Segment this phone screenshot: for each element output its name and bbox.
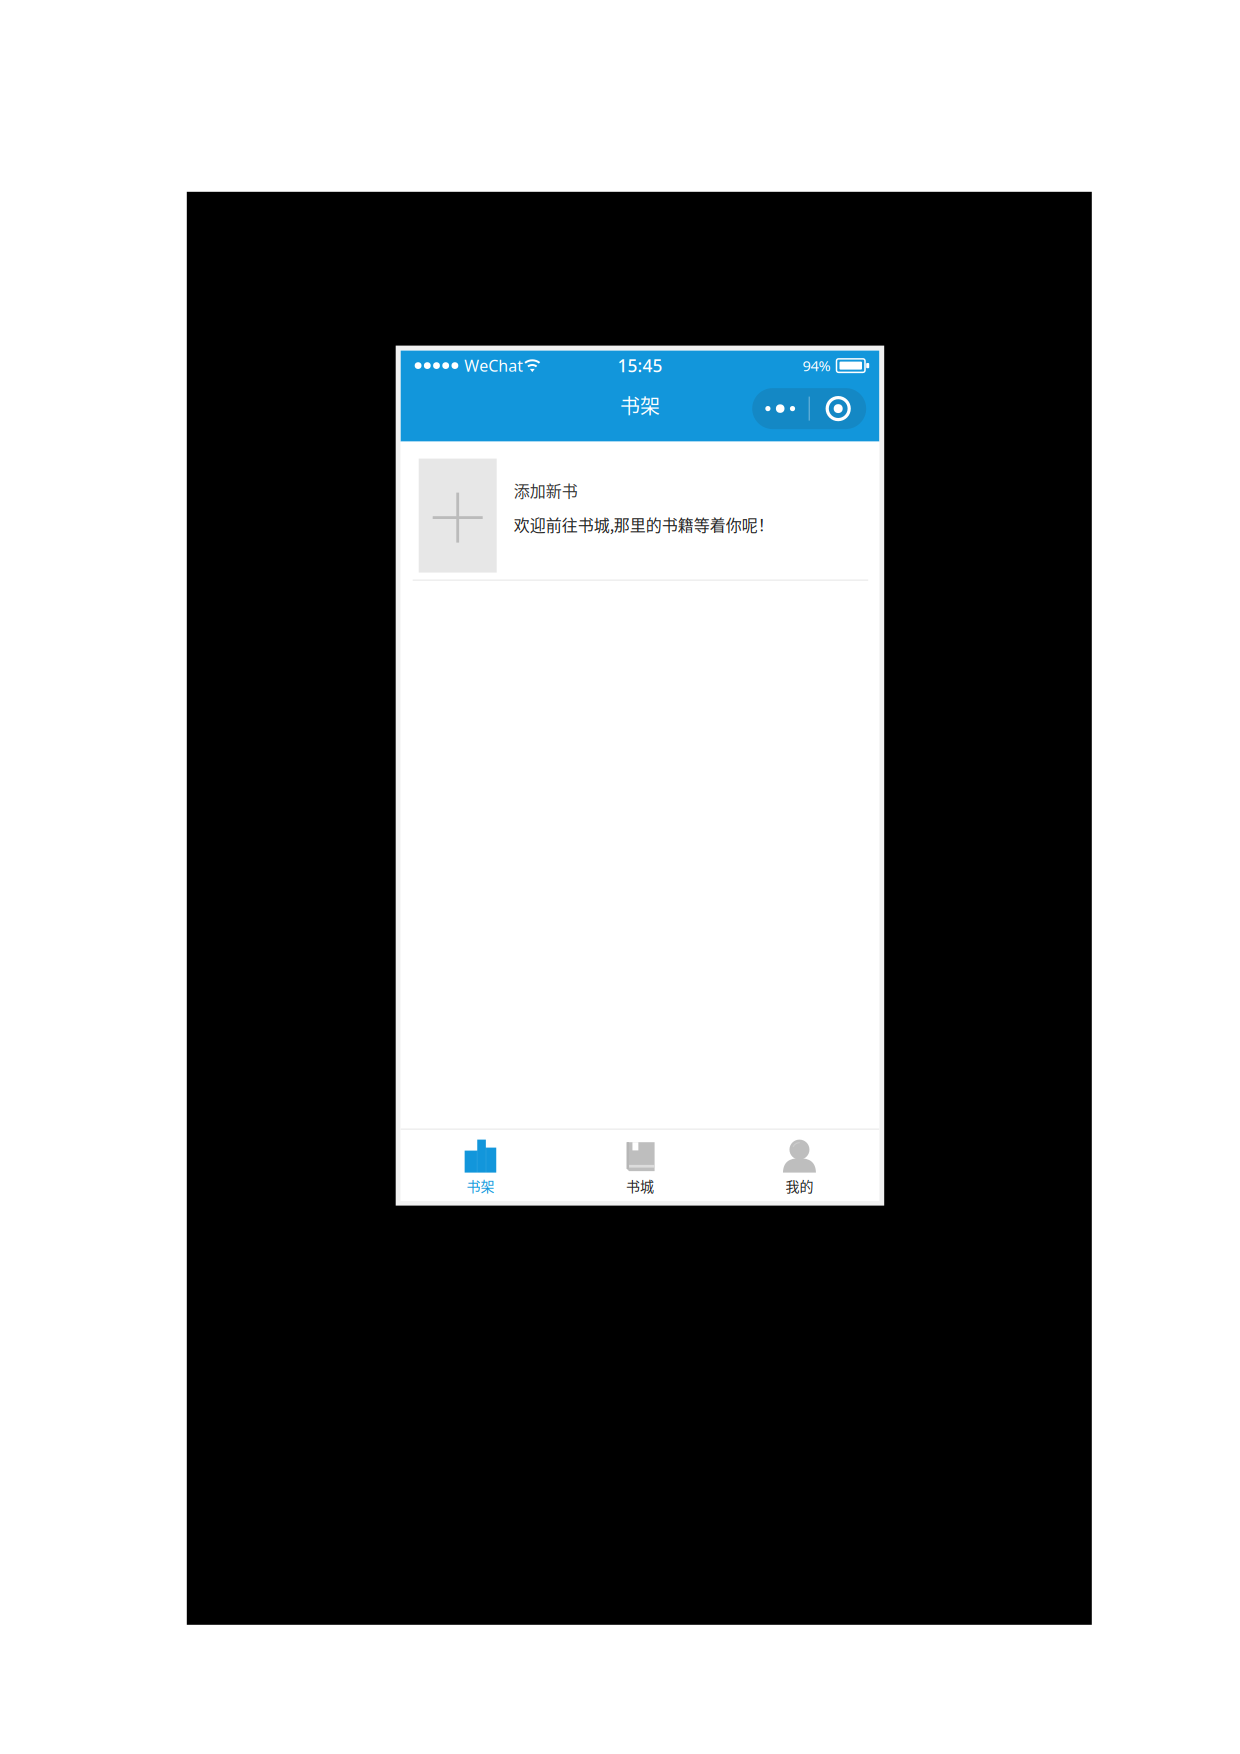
staticText: 书架 <box>620 391 660 420</box>
staticText: 书城 <box>626 1176 654 1196</box>
button[interactable]: 我的 <box>720 1130 879 1201</box>
button[interactable]: 书城 <box>560 1130 720 1201</box>
staticText: 我的 <box>785 1176 813 1196</box>
button[interactable]: 添加新书 <box>401 442 879 581</box>
staticText: WeChat <box>464 355 523 376</box>
staticText: 15:45 <box>617 354 662 377</box>
staticText: 欢迎前往书城,那里的书籍等着你呢！ <box>514 513 774 536</box>
staticText: 书架 <box>466 1176 494 1196</box>
button[interactable]: More options and close mini program <box>752 388 866 429</box>
staticText: 添加新书 <box>514 479 578 502</box>
staticText: 94% <box>802 356 830 375</box>
button[interactable]: 书架 <box>401 1130 560 1201</box>
